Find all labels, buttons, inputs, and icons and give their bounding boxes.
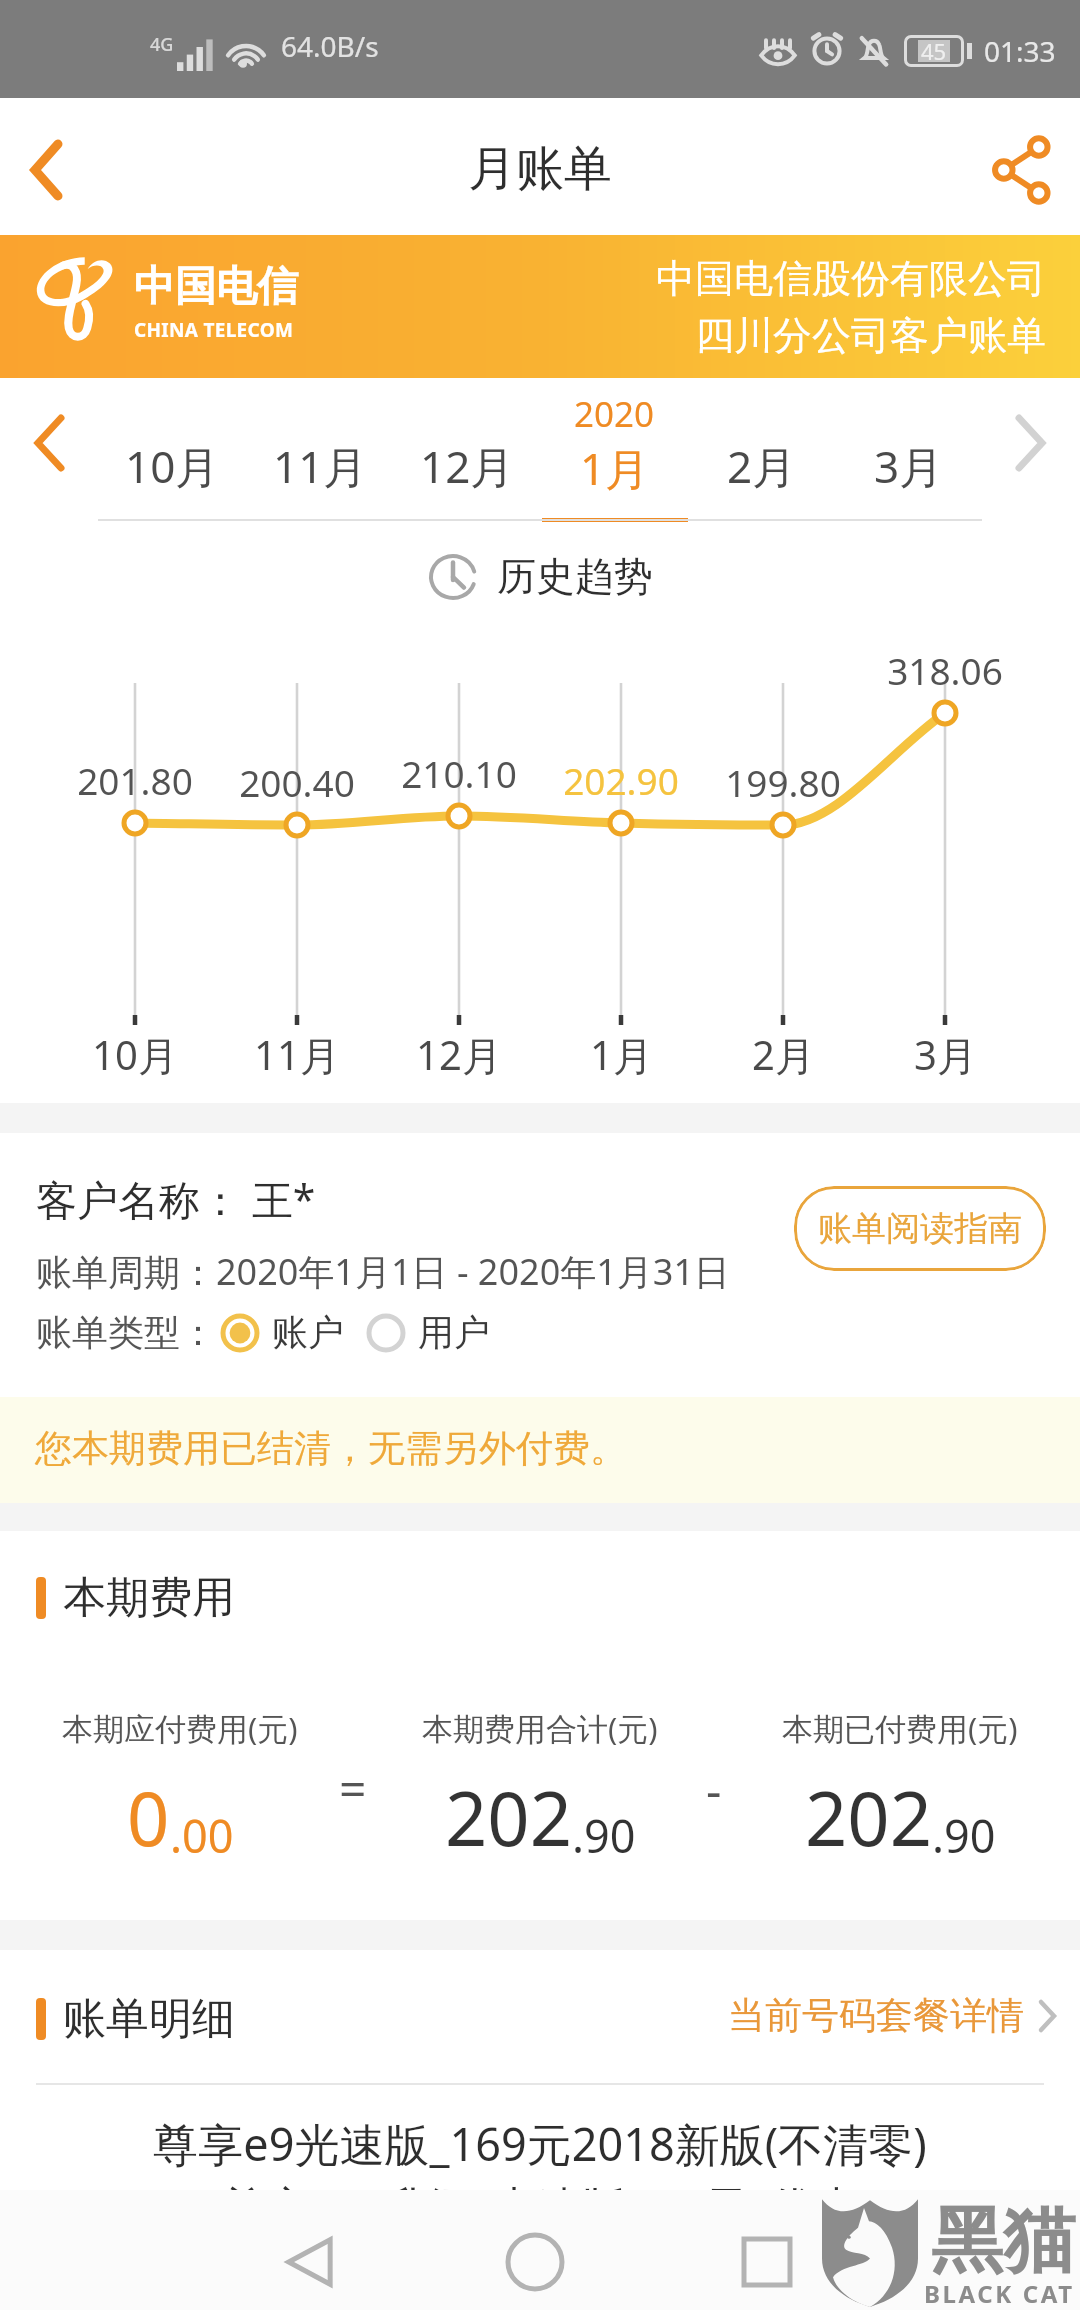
staticText: 64.0B/s (281, 27, 379, 65)
staticText: 本期费用 (63, 1571, 235, 1625)
staticText: 中国电信 (134, 261, 298, 313)
button[interactable]: 3月 (835, 378, 982, 484)
staticText: 10月 (125, 436, 220, 496)
staticText: 客户名称： 王* (36, 1171, 316, 1227)
staticText: 尊享E9_升级_光速版169元_优惠 (0, 2176, 1080, 2237)
staticText: 中国电信股份有限公司 (656, 254, 1046, 303)
staticText: 318.06 (887, 645, 1003, 695)
staticText: - (706, 1757, 722, 1822)
staticText: .90 (932, 1805, 996, 1866)
button[interactable]: 2020 (541, 378, 688, 486)
staticText: 月账单 (468, 139, 612, 199)
staticText: 210.10 (401, 748, 517, 798)
staticText: 202 (445, 1767, 572, 1868)
button[interactable]: 当前号码套餐详情 (728, 1992, 1058, 2039)
staticText: 账单明细 (63, 1992, 235, 2046)
button[interactable]: Back (250, 2202, 370, 2310)
staticText: 202.90 (563, 755, 679, 805)
staticText: 3月 (914, 1027, 977, 1082)
staticText: 2020 (574, 390, 655, 438)
staticText: .00 (170, 1805, 234, 1866)
staticText: 12月 (416, 1027, 502, 1082)
staticText: 0 (127, 1767, 170, 1868)
staticText: 01:33 (984, 32, 1056, 70)
staticText: 您本期费用已结清，无需另外付费。 (35, 1425, 627, 1472)
staticText: 1月 (590, 1027, 653, 1082)
staticText: 4G (150, 32, 174, 57)
staticText: 45 (921, 36, 947, 66)
staticText: CHINA TELECOM (134, 317, 294, 343)
staticText: 四川分公司客户账单 (695, 311, 1046, 360)
staticText: 账单周期：2020年1月1日 - 2020年1月31日 (36, 1247, 731, 1296)
staticText: = (339, 1755, 367, 1820)
button[interactable]: 10月 (98, 378, 246, 484)
button[interactable]: Recents (707, 2202, 827, 2310)
staticText: .90 (572, 1805, 636, 1866)
button[interactable]: 2月 (688, 378, 835, 484)
staticText: 黑猫 (931, 2196, 1075, 2287)
button[interactable]: Back (0, 98, 120, 235)
staticText: 12月 (420, 436, 515, 496)
staticText: BLACK CAT (924, 2277, 1075, 2310)
staticText: 11月 (254, 1027, 340, 1082)
button[interactable]: Previous months (0, 368, 98, 518)
staticText: 尊享e9光速版_169元2018新版(不清零) (0, 2113, 1080, 2174)
staticText: 账单阅读指南 (818, 1207, 1022, 1250)
staticText: 用户 (418, 1310, 490, 1355)
button[interactable]: 12月 (394, 378, 541, 484)
staticText: 201.80 (77, 755, 193, 805)
staticText: 3月 (874, 436, 944, 496)
staticText: 202 (805, 1767, 932, 1868)
staticText: 本期费用合计(元) (422, 1707, 658, 1749)
staticText: 本期已付费用(元) (782, 1707, 1018, 1749)
button[interactable]: 账单阅读指南 (794, 1186, 1046, 1271)
button[interactable]: Home (475, 2202, 595, 2310)
staticText: 200.40 (239, 757, 355, 807)
staticText: 10月 (92, 1027, 178, 1082)
staticText: 11月 (273, 436, 368, 496)
staticText: 1月 (580, 438, 650, 498)
staticText: 账户 (272, 1310, 344, 1355)
staticText: 当前号码套餐详情 (728, 1992, 1024, 2039)
button[interactable]: 11月 (246, 378, 394, 484)
staticText: 账单类型： (36, 1310, 216, 1355)
staticText: 199.80 (725, 757, 841, 807)
staticText: 2月 (752, 1027, 815, 1082)
staticText: 本期应付费用(元) (62, 1707, 298, 1749)
button[interactable]: Share (960, 98, 1080, 235)
staticText: 2月 (727, 436, 797, 496)
staticText: 历史趋势 (497, 552, 653, 601)
button[interactable]: Next months (982, 368, 1080, 518)
